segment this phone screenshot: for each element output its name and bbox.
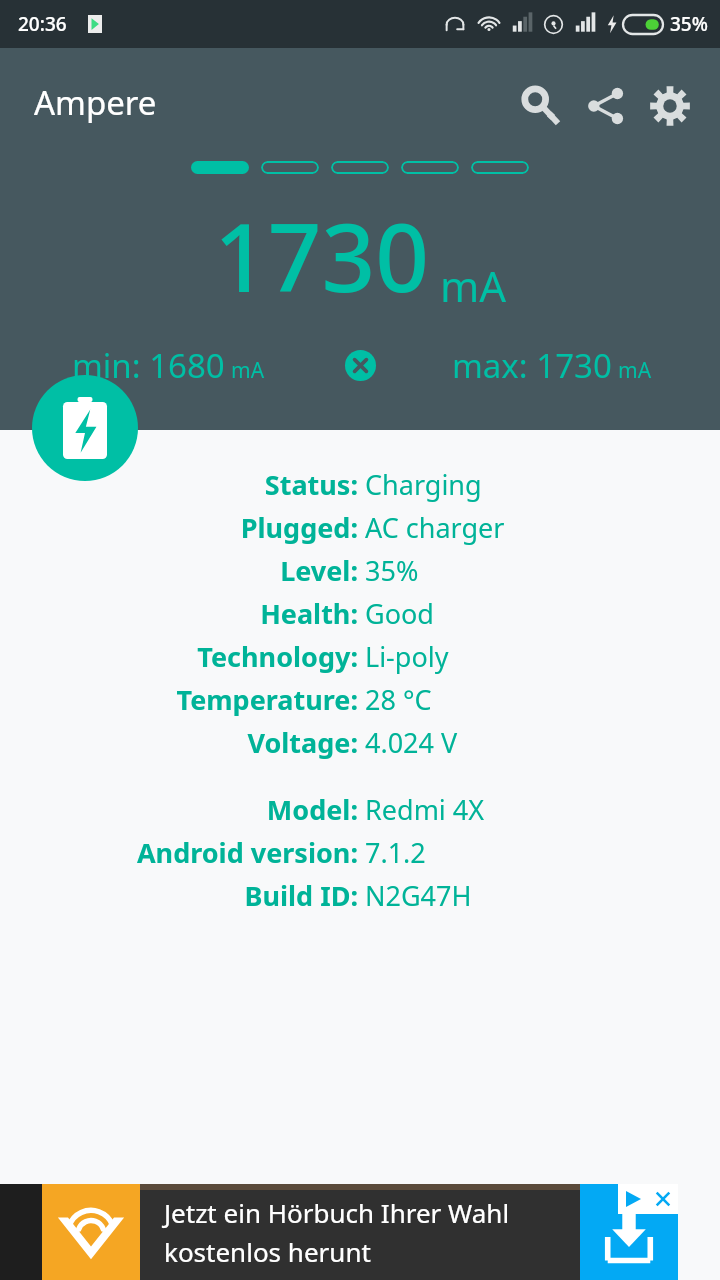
button[interactable] xyxy=(191,161,249,174)
staticText: Voltage: xyxy=(0,724,358,761)
staticText: min: 1680 xyxy=(72,343,225,388)
staticText: 28 °C xyxy=(365,681,432,718)
staticText: 35% xyxy=(365,552,419,589)
button[interactable] xyxy=(331,161,389,174)
staticText: max: 1730 xyxy=(452,343,612,388)
staticText: Plugged: xyxy=(0,509,358,546)
button[interactable]: Settings xyxy=(638,74,702,138)
staticText: Li-poly xyxy=(365,638,449,675)
staticText: Good xyxy=(365,595,434,632)
staticText: Status: xyxy=(0,466,358,503)
staticText: Temperature: xyxy=(0,681,358,718)
button[interactable] xyxy=(261,161,319,174)
staticText: kostenlos herunt xyxy=(164,1234,371,1269)
button[interactable] xyxy=(471,161,529,174)
staticText: 1730 xyxy=(214,192,430,320)
staticText: 35% xyxy=(670,11,708,37)
staticText: 20:36 xyxy=(18,11,67,37)
staticText: Charging xyxy=(365,466,482,503)
staticText: Model: xyxy=(0,791,358,828)
staticText: Android version: xyxy=(0,834,358,871)
button[interactable]: Measuring battery xyxy=(32,375,138,481)
staticText: Ampere xyxy=(34,80,157,125)
staticText: Jetzt ein Hörbuch Ihrer Wahl xyxy=(164,1195,510,1230)
staticText: Level: xyxy=(0,552,358,589)
button[interactable]: Reset min and max xyxy=(337,342,383,388)
staticText: Build ID: xyxy=(0,877,358,914)
staticText: 7.1.2 xyxy=(365,834,426,871)
staticText: AC charger xyxy=(365,509,505,546)
staticText: 4.024 V xyxy=(365,724,458,761)
button[interactable]: Download xyxy=(580,1184,678,1280)
staticText: mA xyxy=(440,257,507,314)
staticText: N2G47H xyxy=(365,877,472,914)
button[interactable]: Jetzt ein Hörbuch Ihrer Wahl xyxy=(0,1184,720,1280)
button[interactable]: Unlock pro xyxy=(510,74,574,138)
staticText: mA xyxy=(618,356,652,385)
staticText: Technology: xyxy=(0,638,358,675)
staticText: Redmi 4X xyxy=(365,791,485,828)
staticText: Health: xyxy=(0,595,358,632)
button[interactable] xyxy=(401,161,459,174)
staticText: mA xyxy=(231,356,265,385)
button[interactable]: Share xyxy=(574,74,638,138)
